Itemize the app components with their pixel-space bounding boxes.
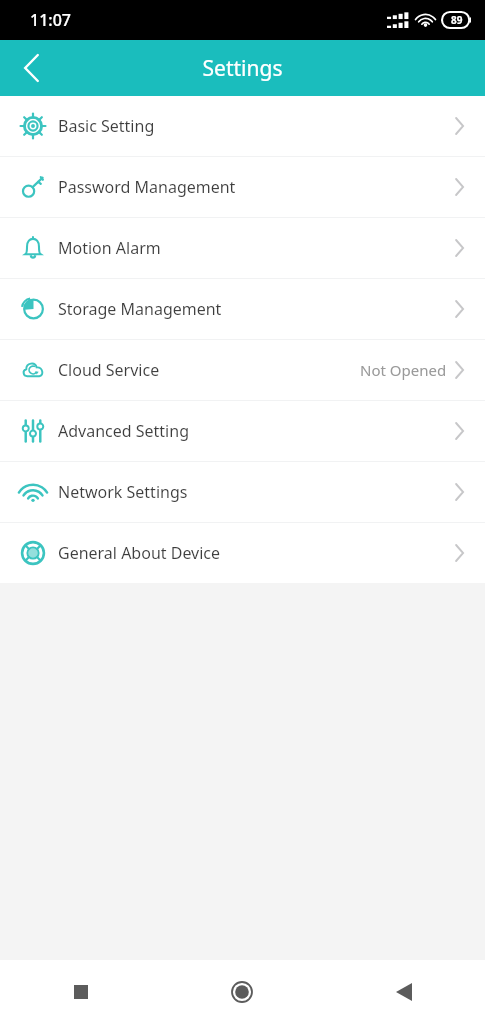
staticText: Not Opened [360, 360, 447, 380]
staticText: Cloud Service [58, 359, 360, 381]
staticText: Motion Alarm [58, 237, 455, 259]
button[interactable]: Back [323, 960, 485, 1024]
staticText: Settings [0, 54, 485, 83]
button[interactable]: Home [161, 960, 323, 1024]
staticText: Password Management [58, 176, 455, 198]
staticText: Basic Setting [58, 115, 455, 137]
button[interactable]: General About Device [0, 523, 485, 583]
button[interactable]: Network Settings [0, 462, 485, 522]
button[interactable]: Advanced Setting [0, 401, 485, 461]
button[interactable]: Storage Management [0, 279, 485, 339]
button[interactable]: Cloud Service [0, 340, 485, 400]
staticText: Advanced Setting [58, 420, 455, 442]
staticText: 89 [451, 13, 463, 27]
button[interactable]: Recents [0, 960, 161, 1024]
button[interactable]: Basic Setting [0, 96, 485, 156]
button[interactable]: Password Management [0, 157, 485, 217]
staticText: 11:07 [30, 9, 71, 31]
button[interactable]: Motion Alarm [0, 218, 485, 278]
staticText: General About Device [58, 542, 455, 564]
button[interactable]: Back [0, 40, 62, 96]
staticText: Network Settings [58, 481, 455, 503]
staticText: Storage Management [58, 298, 455, 320]
